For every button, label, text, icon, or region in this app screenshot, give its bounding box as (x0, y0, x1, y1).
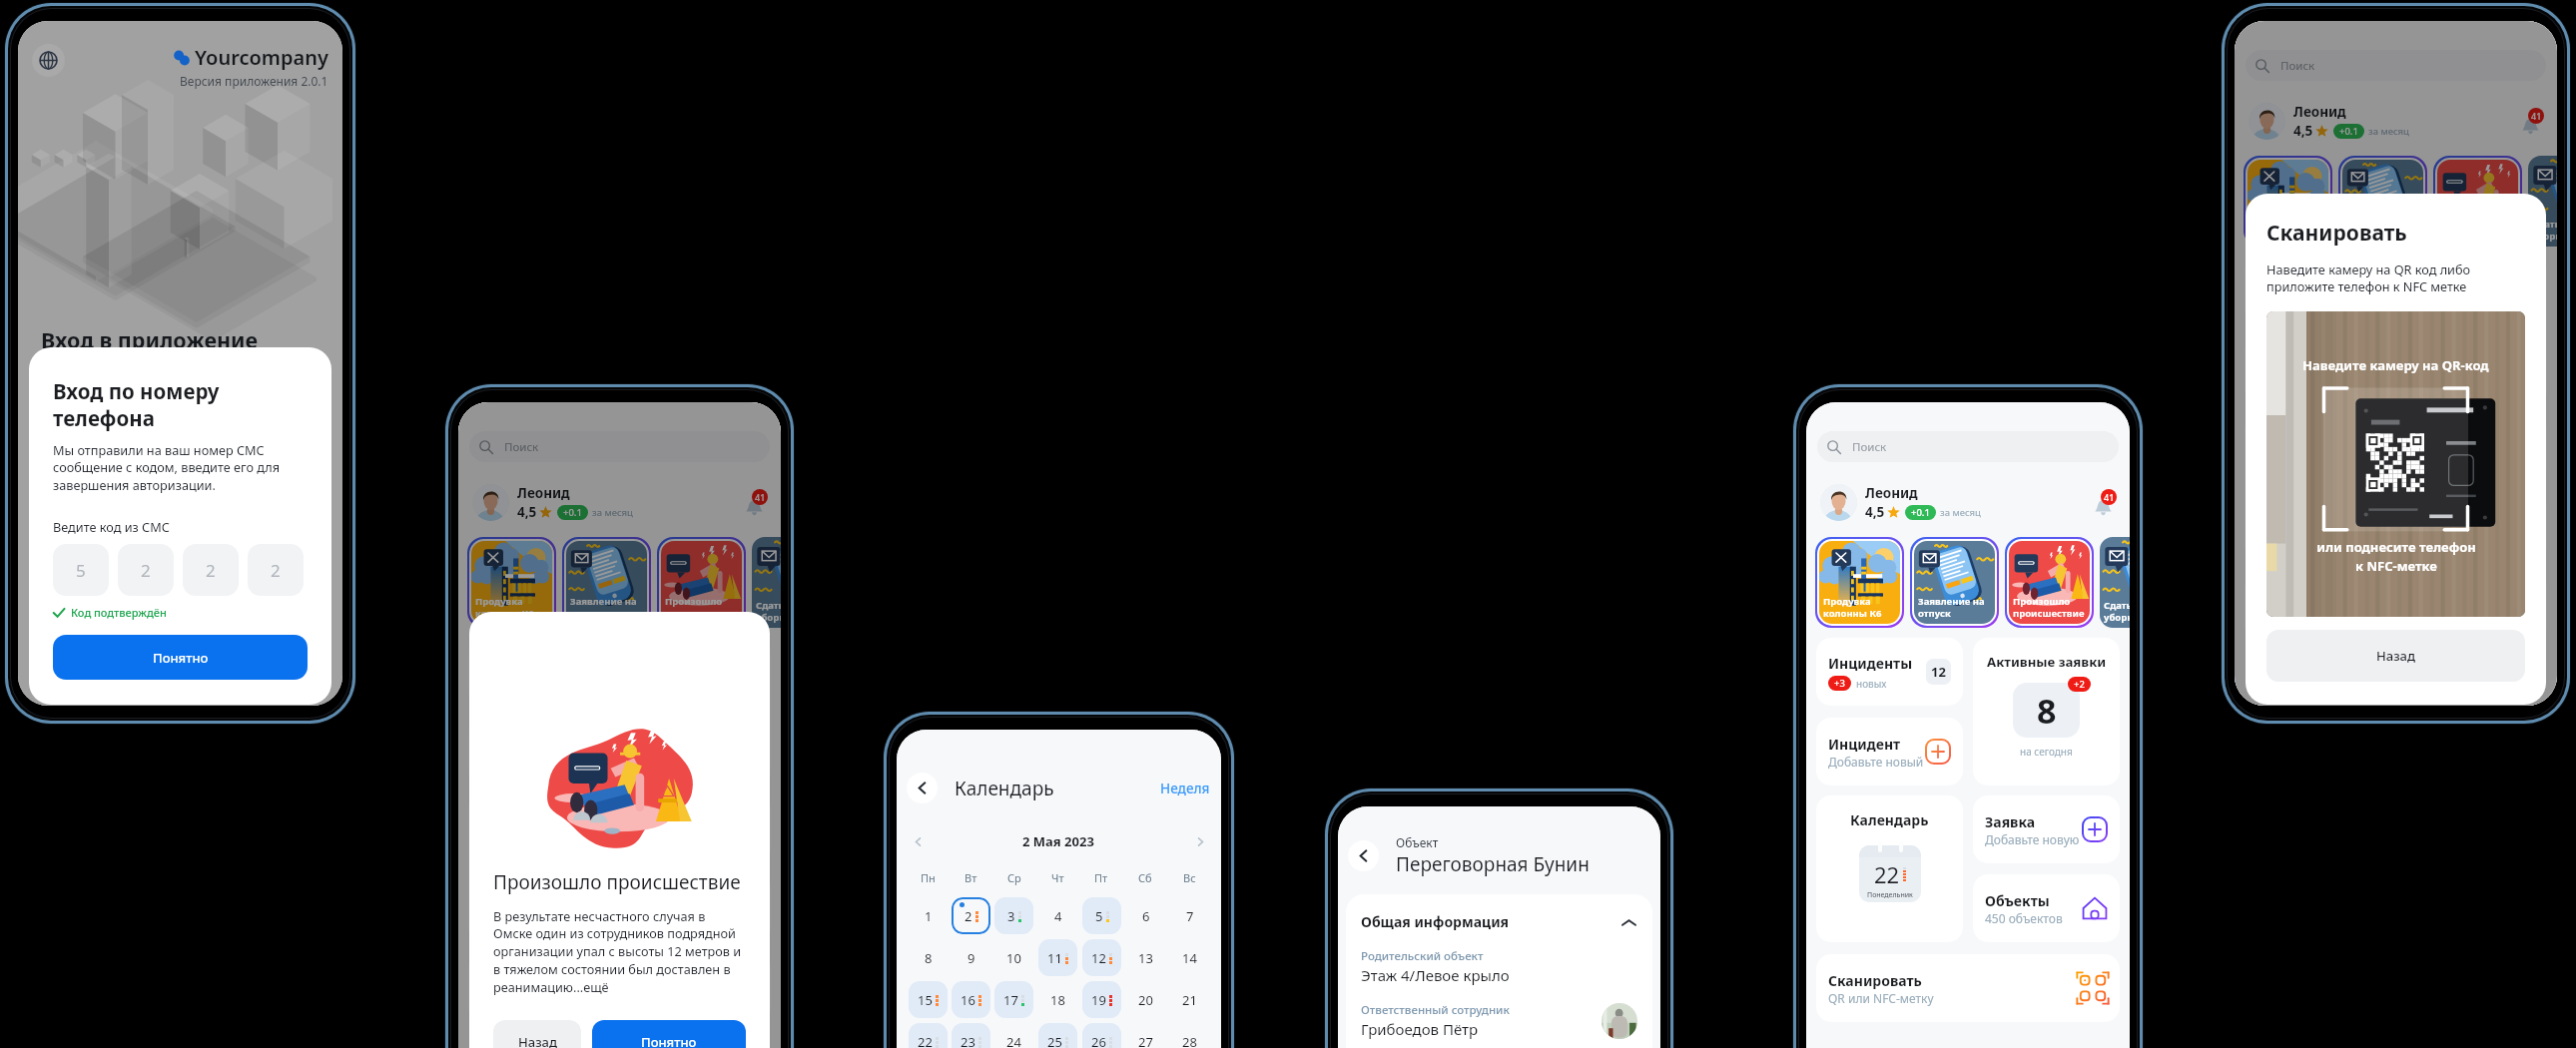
button[interactable]: 22 (909, 1023, 948, 1048)
button[interactable]: Календарь (1816, 795, 1963, 942)
button[interactable]: Инцидент (1816, 718, 1963, 786)
button[interactable]: Активные заявки (1973, 638, 2120, 786)
button[interactable]: Объекты (1973, 874, 2120, 942)
button[interactable]: Заявка (2400, 414, 2547, 482)
button[interactable]: 24 (994, 1023, 1033, 1048)
button[interactable]: 4 (1038, 897, 1077, 934)
button[interactable]: 7 (1170, 897, 1209, 934)
staticText: Чт (1051, 870, 1064, 885)
button[interactable]: 25 (1038, 1023, 1077, 1048)
button[interactable]: 23 (952, 1023, 990, 1048)
button[interactable]: Next month (1192, 833, 1208, 849)
button[interactable]: 13 (1126, 939, 1165, 976)
button[interactable]: Заявка (1973, 795, 2120, 863)
button[interactable]: Продувка колонны К6 (2248, 160, 2328, 243)
staticText: Сканировать (2266, 219, 2407, 248)
button[interactable]: 6 (1126, 897, 1165, 934)
button[interactable]: Поиск (469, 431, 770, 462)
button[interactable]: Понятно (592, 1020, 746, 1048)
button[interactable]: Сканировать (2245, 573, 2547, 641)
button[interactable]: Инциденты (468, 638, 614, 706)
button[interactable]: 28 (1170, 1023, 1209, 1048)
button[interactable]: Активные заявки (2400, 257, 2547, 404)
button[interactable]: Заявление на отпуск (1914, 541, 1995, 624)
button[interactable]: Объекты (624, 874, 771, 942)
button[interactable]: Произошло происшествие (2009, 541, 2090, 624)
button[interactable]: 20 (1126, 981, 1165, 1018)
button[interactable]: 3 (994, 897, 1033, 934)
button[interactable]: Назад (493, 1020, 581, 1048)
button[interactable]: 2 (952, 897, 990, 934)
button[interactable]: Сдать уборк (752, 537, 781, 628)
button[interactable]: Инцидент (468, 718, 614, 786)
button[interactable]: 26 (1082, 1023, 1121, 1048)
button[interactable]: Объекты (2400, 493, 2547, 561)
button[interactable]: 1 (909, 897, 948, 934)
button[interactable]: 27 (1126, 1023, 1165, 1048)
button[interactable]: 2 (248, 544, 304, 596)
button[interactable]: Back (907, 773, 938, 803)
staticText: 4,5 (2293, 122, 2313, 140)
button[interactable]: 8 (909, 939, 948, 976)
button[interactable]: Неделя (1160, 780, 1210, 797)
button[interactable]: Collapse (1619, 913, 1637, 931)
button[interactable]: Сканировать (468, 954, 771, 1022)
button[interactable]: 12 (1082, 939, 1121, 976)
button[interactable]: Продувка колонны К6 (471, 541, 552, 624)
button[interactable]: Notifications (741, 489, 768, 516)
button[interactable]: Profile (1820, 484, 1857, 521)
staticText: Добавьте новую (636, 831, 731, 847)
button[interactable]: 21 (1170, 981, 1209, 1018)
button[interactable]: Сканировать (1816, 954, 2120, 1022)
button[interactable]: Понятно (53, 635, 308, 680)
button[interactable]: 9 (952, 939, 990, 976)
button[interactable]: Активные заявки (624, 638, 771, 786)
button[interactable]: Заявка (624, 795, 771, 863)
staticText: Продувка колонны К6 (475, 595, 534, 620)
button[interactable]: Назад (2266, 630, 2525, 682)
staticText: 20 (1138, 991, 1153, 1009)
button[interactable]: 5 (1082, 897, 1121, 934)
button[interactable]: 17 (994, 981, 1033, 1018)
button[interactable]: Profile (2249, 103, 2285, 140)
button[interactable]: Произошло происшествие (2437, 160, 2518, 243)
button[interactable]: 18 (1038, 981, 1077, 1018)
button[interactable]: Notifications (2090, 489, 2117, 516)
button[interactable]: 5 (53, 544, 109, 596)
button[interactable]: Заявление на отпуск (566, 541, 647, 624)
button[interactable]: Profile (472, 484, 509, 521)
button[interactable]: 2 (183, 544, 239, 596)
button[interactable]: Инциденты (1816, 638, 1963, 706)
staticText: 5 (1095, 907, 1103, 925)
button[interactable]: Сдать уборк (2100, 537, 2130, 628)
staticText: Объекты (2412, 510, 2477, 529)
staticText: Ср (1007, 870, 1021, 885)
button[interactable]: Поиск (1817, 431, 2119, 462)
button[interactable]: 16 (952, 981, 990, 1018)
button[interactable]: Продувка колонны К6 (1819, 541, 1900, 624)
button[interactable]: 19 (1082, 981, 1121, 1018)
button[interactable]: Заявление на отпуск (2342, 160, 2423, 243)
staticText: Вход по номеру телефона (53, 377, 220, 432)
button[interactable]: Инциденты (2245, 257, 2390, 324)
button[interactable]: Notifications (2517, 108, 2544, 135)
button[interactable]: 10 (994, 939, 1033, 976)
button[interactable]: Previous month (910, 833, 926, 849)
button[interactable]: Календарь (468, 795, 614, 942)
button[interactable]: Инцидент (2245, 336, 2390, 404)
button[interactable]: 2 (118, 544, 174, 596)
staticText: 4,5 (517, 503, 537, 521)
button[interactable]: 11 (1038, 939, 1077, 976)
button[interactable]: Back (1348, 840, 1379, 871)
button[interactable]: Поиск (2246, 50, 2546, 81)
staticText: 12 (1931, 663, 1946, 681)
button[interactable]: 14 (1170, 939, 1209, 976)
button[interactable]: Произошло происшествие (661, 541, 742, 624)
button[interactable]: 15 (909, 981, 948, 1018)
button[interactable]: Календарь (2245, 414, 2390, 561)
button[interactable]: Language (32, 44, 65, 77)
button[interactable]: Сдать уборк (2528, 156, 2557, 247)
staticText: Сканировать (480, 971, 574, 990)
staticText: 450 объектов (636, 910, 714, 926)
